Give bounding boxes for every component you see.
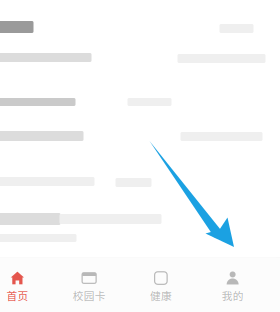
button[interactable]: 健康 [125, 258, 197, 312]
button[interactable]: 我的 [197, 258, 269, 312]
button[interactable]: 校园卡 [53, 258, 125, 312]
staticText: 校园卡 [73, 288, 106, 303]
staticText: 健康 [150, 288, 172, 303]
staticText: 我的 [222, 288, 244, 303]
button[interactable]: 首页 [0, 258, 53, 312]
staticText: 首页 [6, 288, 28, 303]
